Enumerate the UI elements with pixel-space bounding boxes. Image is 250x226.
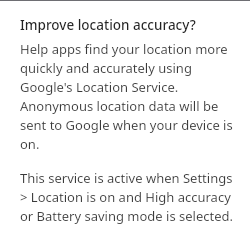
staticText: Help apps find your location more quickl… <box>20 40 236 153</box>
staticText: Improve location accuracy? <box>20 16 196 34</box>
staticText: This service is active when Settings > L… <box>20 169 238 225</box>
